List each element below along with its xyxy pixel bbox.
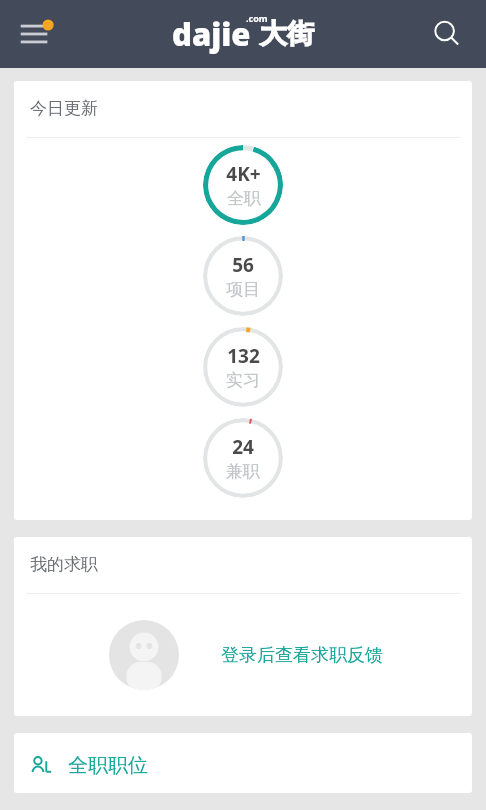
staticText: 全职	[227, 188, 261, 209]
staticText: 全职职位	[68, 753, 148, 778]
staticText: 登录后查看求职反馈	[221, 644, 383, 667]
button[interactable]: Open navigation menu	[10, 6, 66, 62]
staticText: 132	[227, 343, 260, 369]
button[interactable]: 56	[203, 236, 283, 316]
staticText: .com	[246, 12, 268, 24]
button[interactable]: 登录后查看求职反馈	[14, 594, 472, 716]
button[interactable]: 全职职位	[14, 733, 472, 793]
staticText: 今日更新	[30, 98, 98, 119]
button[interactable]: 24	[203, 418, 283, 498]
staticText: 24	[232, 434, 254, 460]
button[interactable]: Search	[422, 9, 472, 59]
staticText: 大街	[260, 17, 314, 51]
staticText: dajie	[172, 13, 251, 55]
staticText: 56	[232, 252, 254, 278]
staticText: 兼职	[226, 461, 260, 482]
staticText: 我的求职	[30, 554, 98, 575]
staticText: 4K+	[226, 161, 261, 187]
staticText: 项目	[226, 279, 260, 300]
staticText: 实习	[226, 370, 260, 391]
button[interactable]: 132	[203, 327, 283, 407]
button[interactable]: 4K+	[203, 145, 283, 225]
